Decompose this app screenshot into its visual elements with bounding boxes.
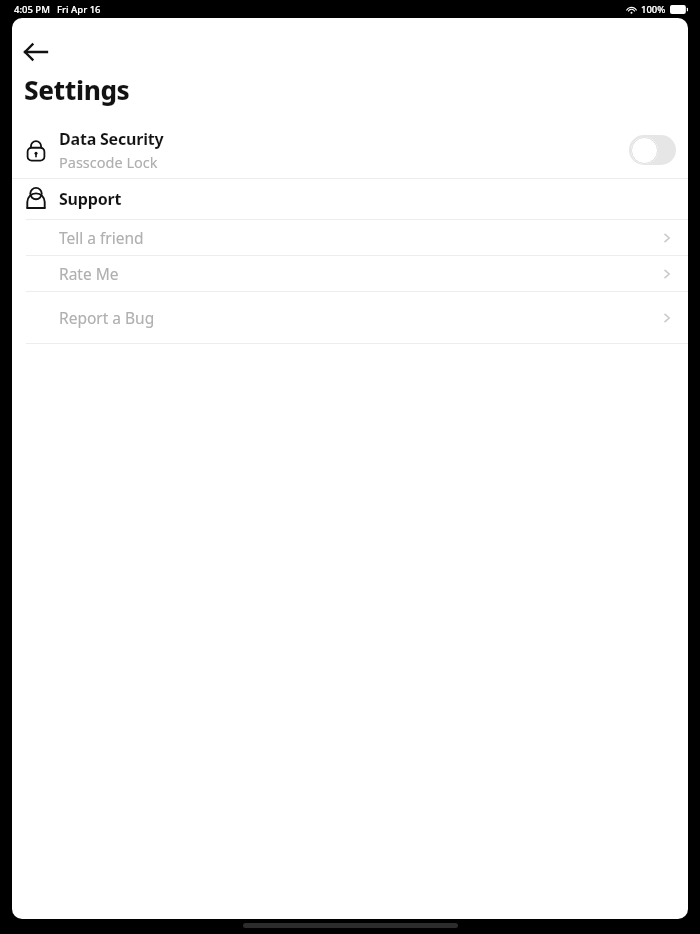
button[interactable]: Rate Me <box>12 256 688 291</box>
staticText: Data Security <box>59 128 164 150</box>
staticText: Settings <box>24 72 130 107</box>
staticText: Support <box>59 188 122 210</box>
button[interactable]: Back <box>22 32 62 72</box>
staticText: Fri Apr 16 <box>57 3 101 16</box>
button[interactable]: Data Security <box>12 122 688 178</box>
staticText: Tell a friend <box>59 227 660 248</box>
button[interactable]: Passcode Lock toggle <box>629 135 676 165</box>
button[interactable]: Report a Bug <box>12 292 688 343</box>
staticText: 100% <box>641 3 666 16</box>
staticText: Report a Bug <box>59 307 660 328</box>
staticText: 4:05 PM <box>14 3 50 16</box>
staticText: Passcode Lock <box>59 152 158 172</box>
button[interactable]: Tell a friend <box>12 220 688 255</box>
staticText: Rate Me <box>59 263 660 284</box>
button[interactable]: Support <box>12 179 688 219</box>
